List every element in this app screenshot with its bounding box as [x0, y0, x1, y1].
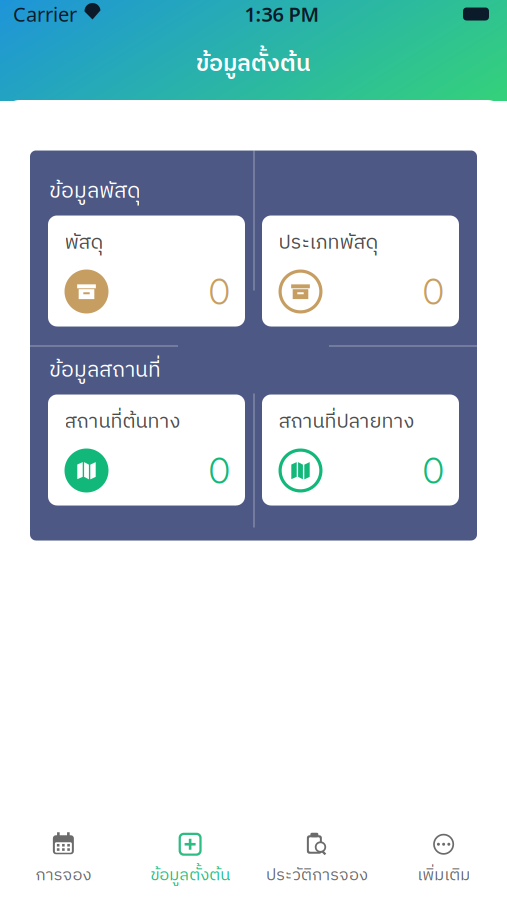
button[interactable]: เพิ่มเติม: [380, 821, 507, 900]
button[interactable]: สถานที่ปลายทาง: [262, 394, 459, 505]
staticText: ประวัติการจอง: [266, 862, 368, 889]
staticText: ข้อมูลตั้งต้น: [196, 45, 311, 83]
staticText: ข้อมูลตั้งต้น: [150, 862, 230, 889]
staticText: 0: [422, 449, 444, 492]
staticText: 1:36 PM: [244, 1, 319, 27]
button[interactable]: ประวัติการจอง: [253, 821, 380, 900]
staticText: Carrier: [13, 1, 77, 27]
button[interactable]: สถานที่ต้นทาง: [48, 394, 245, 505]
staticText: 0: [208, 449, 230, 492]
staticText: ข้อมูลพัสดุ: [49, 174, 141, 209]
staticText: พัสดุ: [64, 226, 103, 259]
staticText: สถานที่ต้นทาง: [64, 405, 180, 438]
button[interactable]: ข้อมูลตั้งต้น: [127, 821, 254, 900]
staticText: 0: [208, 270, 230, 313]
staticText: การจอง: [35, 862, 91, 889]
staticText: 0: [422, 270, 444, 313]
button[interactable]: พัสดุ: [48, 215, 245, 326]
staticText: ข้อมูลสถานที่: [49, 353, 161, 388]
button[interactable]: การจอง: [0, 821, 127, 900]
button[interactable]: ประเภทพัสดุ: [262, 215, 459, 326]
staticText: เพิ่มเติม: [417, 862, 470, 889]
staticText: ประเภทพัสดุ: [278, 226, 378, 259]
staticText: สถานที่ปลายทาง: [278, 405, 414, 438]
